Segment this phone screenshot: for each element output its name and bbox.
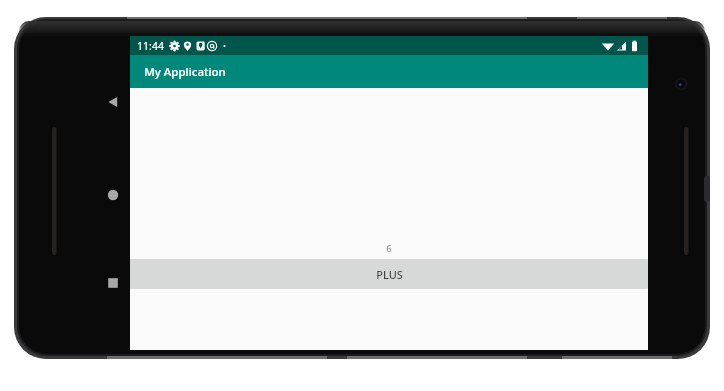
staticText: 11:44: [137, 39, 164, 53]
staticText: My Application: [144, 64, 226, 80]
button[interactable]: PLUS: [130, 259, 648, 289]
button[interactable]: Recent apps: [100, 270, 126, 296]
staticText: PLUS: [376, 267, 403, 282]
button[interactable]: Home: [100, 182, 126, 208]
staticText: 6: [386, 242, 392, 255]
button[interactable]: Back: [100, 89, 126, 115]
